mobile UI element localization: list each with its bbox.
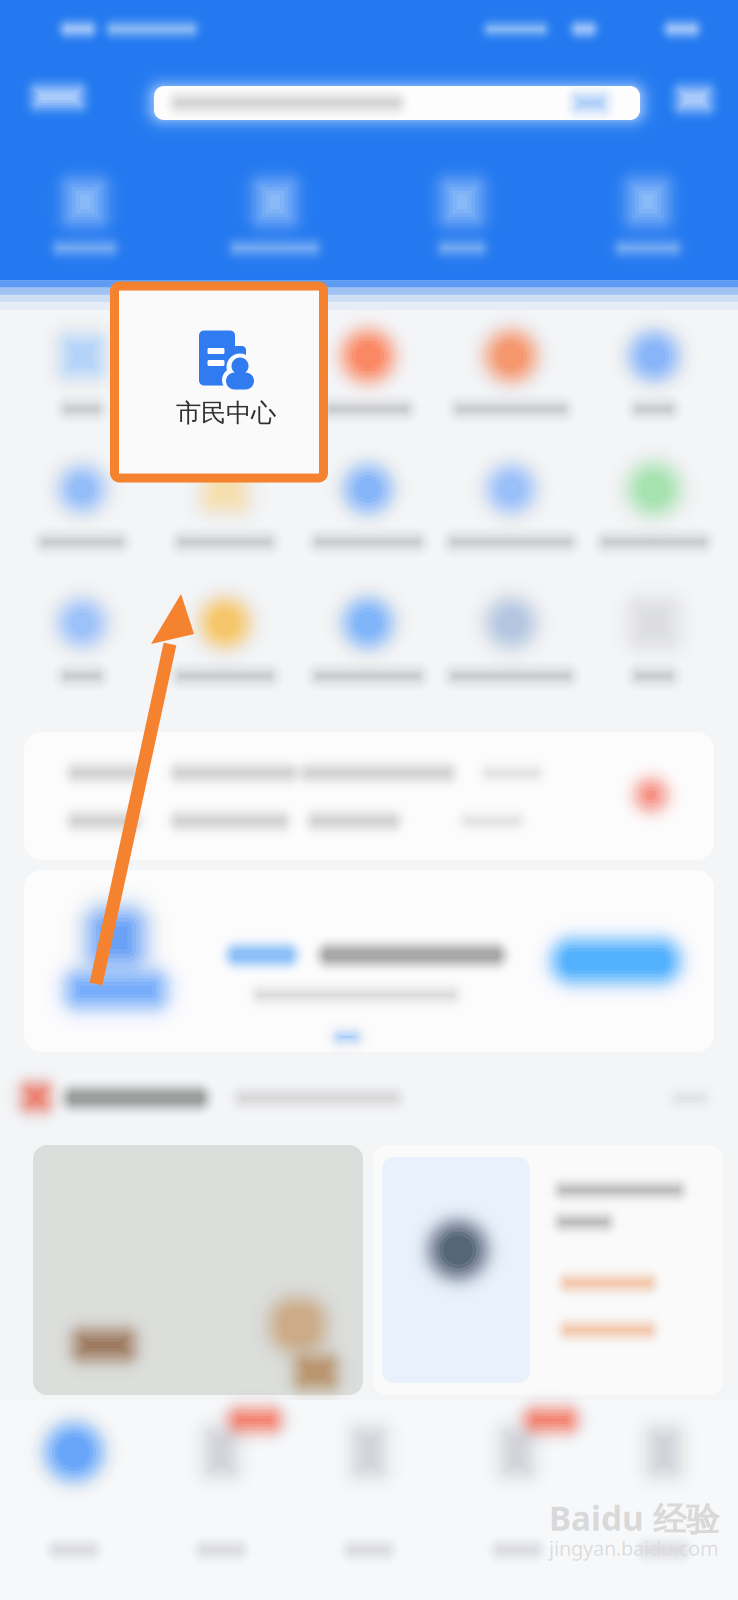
staticText: Baidu 经验 bbox=[549, 1496, 719, 1540]
button[interactable]: Notice bbox=[24, 732, 714, 860]
button[interactable]: App bbox=[154, 316, 296, 446]
button[interactable]: Article bbox=[33, 1145, 363, 1395]
button[interactable]: Quick action bbox=[206, 162, 344, 272]
button[interactable]: App bbox=[440, 583, 582, 713]
button[interactable]: App bbox=[583, 583, 725, 713]
button[interactable]: App bbox=[11, 449, 153, 579]
button[interactable]: App bbox=[583, 449, 725, 579]
button[interactable]: Koubei bbox=[296, 1400, 442, 1590]
button[interactable]: Article bbox=[373, 1145, 723, 1395]
button[interactable]: Promotion bbox=[24, 870, 714, 1052]
button[interactable]: Quick action bbox=[393, 162, 531, 272]
button[interactable]: 市民中心 bbox=[110, 281, 328, 482]
button[interactable]: App bbox=[11, 316, 153, 446]
button[interactable]: App bbox=[440, 316, 582, 446]
button[interactable]: App bbox=[11, 583, 153, 713]
button[interactable]: Friends bbox=[444, 1400, 590, 1590]
button[interactable]: App bbox=[440, 449, 582, 579]
button[interactable]: App bbox=[154, 449, 296, 579]
staticText: 市民中心 bbox=[176, 397, 276, 428]
button[interactable]: Finance bbox=[148, 1400, 294, 1590]
button[interactable]: Me bbox=[591, 1400, 737, 1590]
button[interactable]: Home bbox=[1, 1400, 147, 1590]
button[interactable]: App bbox=[297, 449, 439, 579]
button[interactable]: Quick action bbox=[16, 162, 154, 272]
button[interactable]: Quick action bbox=[579, 162, 717, 272]
button[interactable]: App bbox=[297, 583, 439, 713]
button[interactable]: App bbox=[154, 583, 296, 713]
staticText: jingyan.baidu.com bbox=[549, 1535, 719, 1561]
button[interactable]: App bbox=[583, 316, 725, 446]
button[interactable]: App bbox=[297, 316, 439, 446]
